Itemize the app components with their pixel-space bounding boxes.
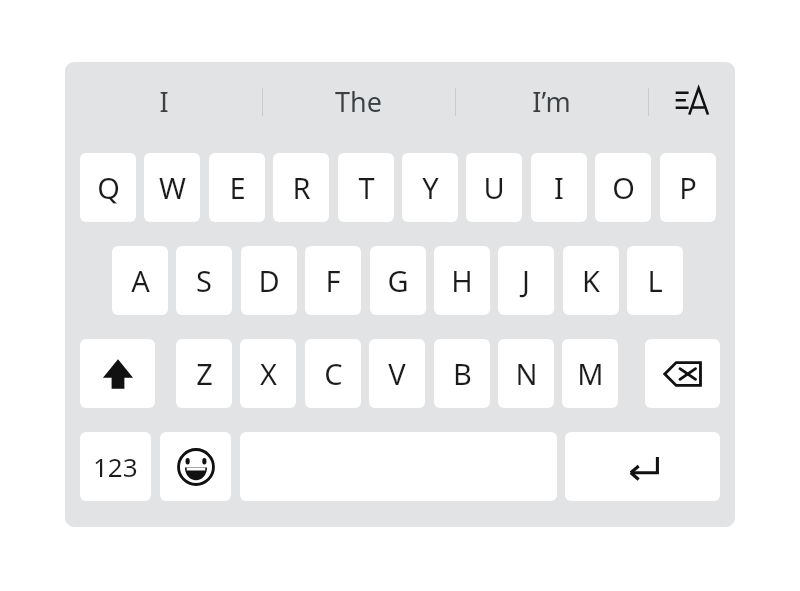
staticText: V bbox=[388, 354, 406, 393]
staticText: O bbox=[612, 168, 635, 207]
staticText: T bbox=[358, 168, 375, 207]
staticText: 123 bbox=[93, 449, 138, 484]
button[interactable]: F bbox=[305, 246, 361, 315]
staticText: J bbox=[522, 261, 530, 300]
button[interactable]: X bbox=[240, 339, 296, 408]
button[interactable]: Backspace bbox=[645, 339, 720, 408]
staticText: F bbox=[325, 261, 341, 300]
button[interactable]: D bbox=[241, 246, 297, 315]
button[interactable]: Q bbox=[80, 153, 136, 222]
staticText: H bbox=[451, 261, 473, 300]
button[interactable]: Y bbox=[402, 153, 458, 222]
button[interactable]: I’m bbox=[455, 62, 648, 140]
staticText: Y bbox=[422, 168, 439, 207]
staticText: R bbox=[292, 168, 311, 207]
staticText: C bbox=[324, 354, 343, 393]
staticText: K bbox=[582, 261, 600, 300]
staticText: D bbox=[258, 261, 280, 300]
staticText: B bbox=[453, 354, 472, 393]
staticText: G bbox=[387, 261, 409, 300]
button[interactable]: Shift bbox=[80, 339, 155, 408]
staticText: P bbox=[679, 168, 697, 207]
button[interactable]: O bbox=[595, 153, 651, 222]
button[interactable]: C bbox=[305, 339, 361, 408]
staticText: The bbox=[335, 83, 382, 120]
button[interactable]: Z bbox=[176, 339, 232, 408]
button[interactable]: R bbox=[273, 153, 329, 222]
button[interactable]: I bbox=[65, 62, 262, 140]
button[interactable]: W bbox=[144, 153, 200, 222]
staticText: Z bbox=[196, 354, 213, 393]
button[interactable]: Emoji bbox=[160, 432, 231, 501]
button[interactable]: U bbox=[466, 153, 522, 222]
button[interactable]: A bbox=[112, 246, 168, 315]
button[interactable]: G bbox=[370, 246, 426, 315]
staticText: U bbox=[483, 168, 505, 207]
button[interactable]: M bbox=[562, 339, 618, 408]
button[interactable]: 123 bbox=[80, 432, 151, 501]
staticText: I’m bbox=[532, 83, 571, 120]
staticText: I bbox=[159, 83, 169, 120]
staticText: L bbox=[647, 261, 663, 300]
staticText: Q bbox=[97, 168, 120, 207]
staticText: A bbox=[131, 261, 150, 300]
staticText: M bbox=[577, 354, 604, 393]
button[interactable]: V bbox=[369, 339, 425, 408]
button[interactable]: S bbox=[176, 246, 232, 315]
button[interactable]: The bbox=[262, 62, 455, 140]
staticText: X bbox=[260, 354, 277, 393]
staticText: W bbox=[159, 168, 186, 207]
staticText: N bbox=[515, 354, 538, 393]
button[interactable]: Enter bbox=[565, 432, 720, 501]
button[interactable]: J bbox=[498, 246, 554, 315]
button[interactable]: P bbox=[660, 153, 716, 222]
staticText: S bbox=[196, 261, 212, 300]
button[interactable]: H bbox=[434, 246, 490, 315]
staticText: E bbox=[229, 168, 246, 207]
button[interactable]: N bbox=[498, 339, 554, 408]
button[interactable]: I bbox=[531, 153, 587, 222]
button[interactable]: Text formatting bbox=[648, 62, 735, 140]
button[interactable]: T bbox=[338, 153, 394, 222]
staticText: I bbox=[554, 168, 564, 207]
button[interactable]: B bbox=[434, 339, 490, 408]
button[interactable]: L bbox=[627, 246, 683, 315]
button[interactable]: K bbox=[563, 246, 619, 315]
button[interactable]: E bbox=[209, 153, 265, 222]
